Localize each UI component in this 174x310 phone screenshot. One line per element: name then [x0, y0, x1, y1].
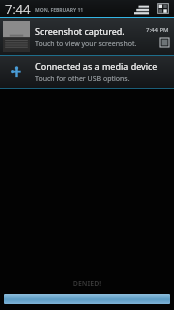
other: Screenshot image [160, 38, 169, 47]
other: USB connected [3, 59, 30, 86]
button[interactable]: USB connected [0, 56, 174, 88]
staticText: Touch for other USB options. [35, 74, 130, 84]
staticText: 7:44 PM [146, 26, 169, 34]
button[interactable] [4, 294, 170, 304]
staticText: Touch to view your screenshot. [35, 39, 137, 49]
other: Wi-Fi signal [134, 2, 150, 15]
staticText: 7:44 [5, 0, 31, 17]
staticText: Screenshot captured. [35, 25, 125, 37]
button[interactable]: Screenshot captured. [0, 18, 174, 55]
other: Battery [156, 2, 170, 15]
staticText: MON, FEBRUARY 11 [35, 7, 84, 14]
staticText: DENIED! [0, 279, 174, 289]
staticText: Connected as a media device [35, 60, 158, 72]
